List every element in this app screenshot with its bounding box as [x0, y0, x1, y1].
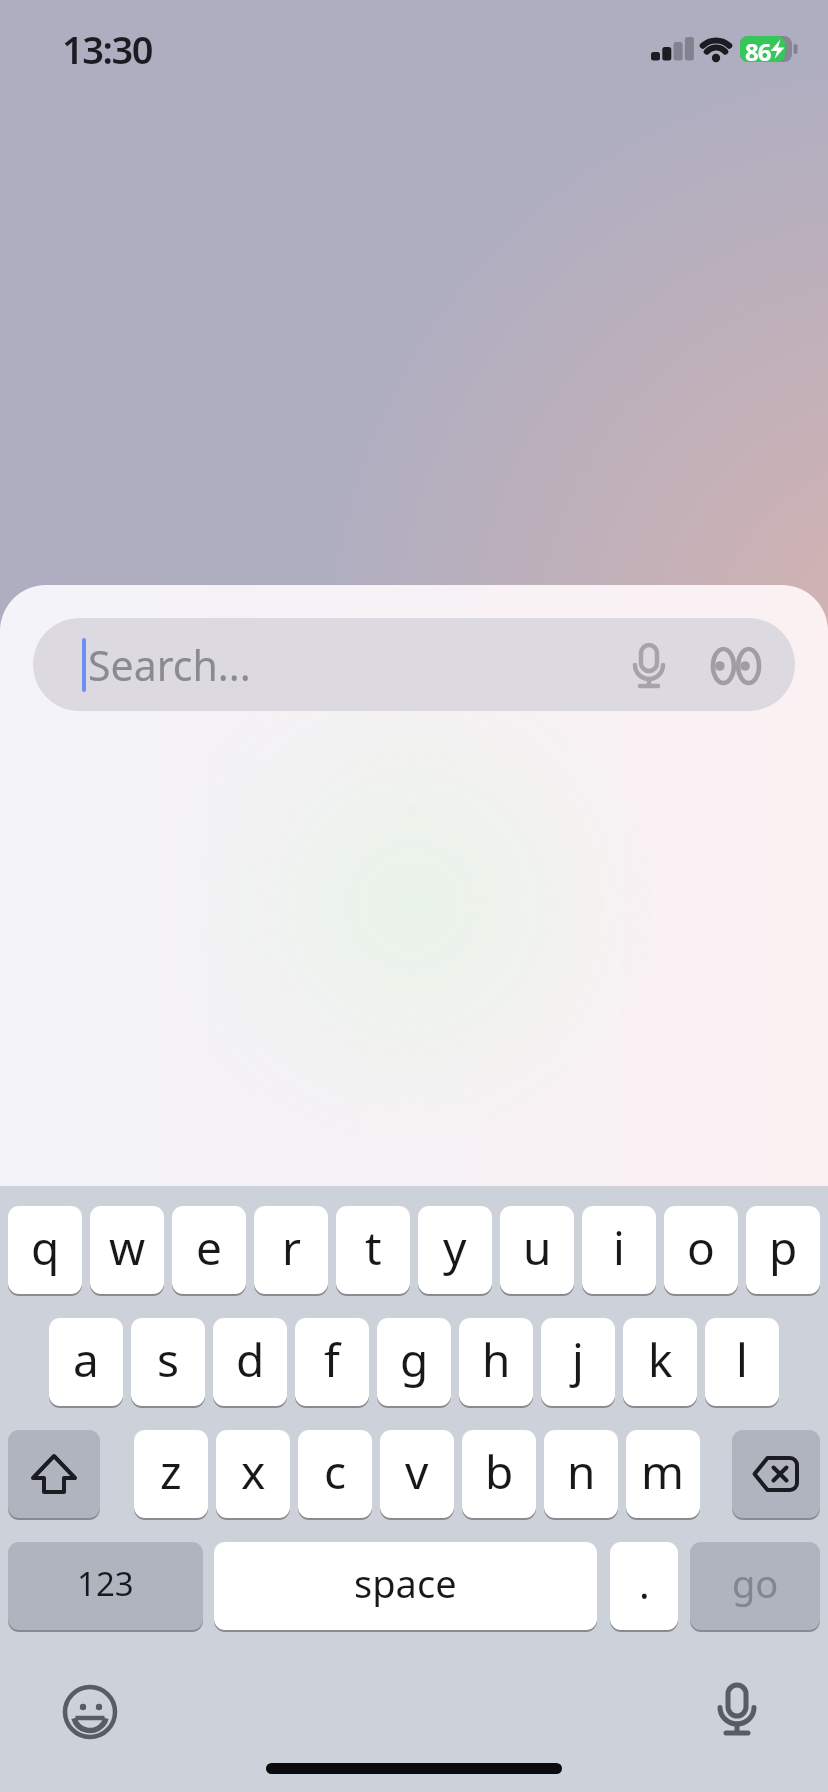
staticText: 123 [77, 1561, 134, 1606]
button[interactable]: 123 [8, 1542, 203, 1630]
button[interactable]: q [8, 1206, 82, 1294]
staticText: p [769, 1216, 798, 1279]
button[interactable]: j [541, 1318, 615, 1406]
button[interactable]: c [298, 1430, 372, 1518]
button[interactable]: w [90, 1206, 164, 1294]
staticText: h [482, 1328, 511, 1391]
staticText: y [443, 1216, 467, 1279]
staticText: Search... [88, 637, 251, 693]
staticText: go [732, 1557, 779, 1609]
staticText: s [157, 1328, 180, 1391]
staticText: k [648, 1328, 673, 1391]
button[interactable]: b [462, 1430, 536, 1518]
button[interactable]: t [336, 1206, 410, 1294]
staticText: f [324, 1328, 340, 1391]
button[interactable]: g [377, 1318, 451, 1406]
button[interactable]: s [131, 1318, 205, 1406]
staticText: i [613, 1216, 625, 1279]
button[interactable]: z [134, 1430, 208, 1518]
button[interactable]: e [172, 1206, 246, 1294]
button[interactable] [62, 1684, 118, 1740]
staticText: v [405, 1440, 429, 1503]
staticText: g [400, 1328, 429, 1391]
staticText: w [109, 1216, 146, 1279]
button[interactable]: a [49, 1318, 123, 1406]
button[interactable]: v [380, 1430, 454, 1518]
staticText: t [365, 1216, 382, 1279]
button[interactable]: r [254, 1206, 328, 1294]
staticText: q [31, 1216, 60, 1279]
button[interactable] [732, 1430, 820, 1518]
staticText: r [282, 1216, 301, 1279]
button[interactable]: u [500, 1206, 574, 1294]
button[interactable]: space [214, 1542, 597, 1630]
staticText: j [572, 1328, 584, 1391]
button[interactable]: go [690, 1542, 820, 1630]
button[interactable]: n [544, 1430, 618, 1518]
staticText: z [160, 1440, 182, 1503]
button[interactable]: x [216, 1430, 290, 1518]
staticText: a [73, 1328, 99, 1391]
button[interactable]: h [459, 1318, 533, 1406]
button[interactable]: o [664, 1206, 738, 1294]
staticText: e [196, 1216, 222, 1279]
button[interactable]: y [418, 1206, 492, 1294]
button[interactable]: m [626, 1430, 700, 1518]
staticText: l [736, 1328, 748, 1391]
staticText: 13:30 [62, 23, 152, 75]
button[interactable]: f [295, 1318, 369, 1406]
staticText: c [324, 1440, 347, 1503]
staticText: b [485, 1440, 514, 1503]
button[interactable] [8, 1430, 100, 1518]
staticText: 86 [745, 35, 771, 68]
staticText: u [523, 1216, 552, 1279]
button[interactable]: k [623, 1318, 697, 1406]
staticText: m [641, 1440, 685, 1503]
button[interactable] [710, 1682, 764, 1742]
button[interactable]: p [746, 1206, 820, 1294]
staticText: d [236, 1328, 265, 1391]
button[interactable]: . [610, 1542, 678, 1630]
button[interactable]: d [213, 1318, 287, 1406]
staticText: . [639, 1556, 650, 1610]
button[interactable]: i [582, 1206, 656, 1294]
staticText: space [354, 1557, 457, 1609]
button[interactable]: Search... [33, 618, 795, 711]
staticText: o [687, 1216, 715, 1279]
staticText: n [567, 1440, 596, 1503]
button[interactable]: l [705, 1318, 779, 1406]
staticText: x [241, 1440, 266, 1503]
